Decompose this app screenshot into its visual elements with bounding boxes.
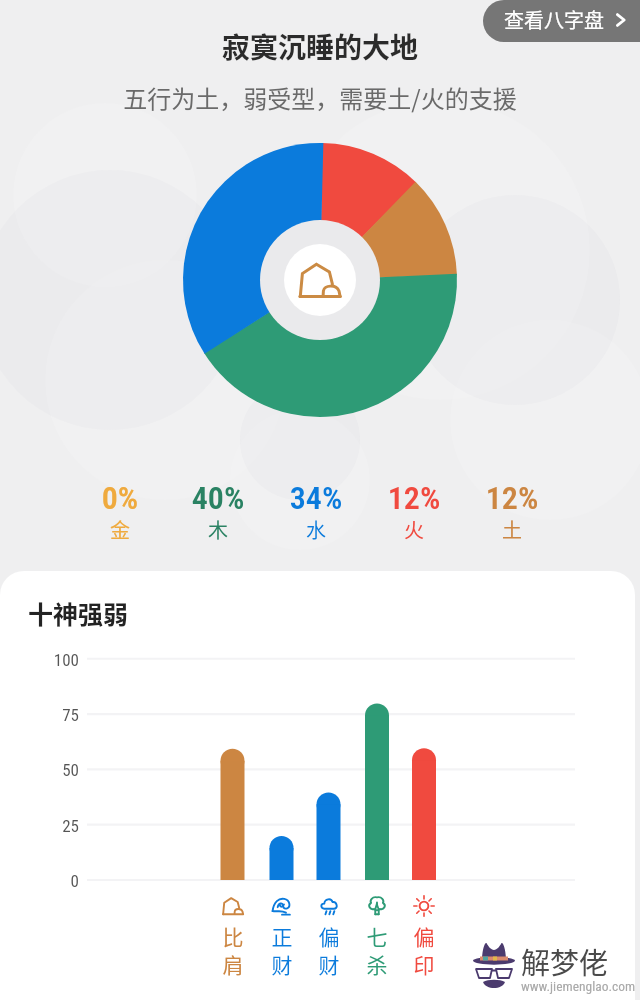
staticText: 0%: [80, 479, 160, 517]
staticText: 水: [276, 515, 356, 544]
staticText: 偏 印: [402, 921, 446, 979]
staticText: www.jiemenglao.com: [521, 978, 635, 994]
staticText: 十神强弱: [28, 595, 129, 631]
staticText: 100: [19, 650, 79, 670]
staticText: 土: [472, 515, 552, 544]
staticText: 查看八字盘: [504, 5, 604, 34]
staticText: 金: [80, 515, 160, 544]
staticText: 40%: [178, 479, 258, 517]
staticText: 0: [19, 871, 79, 891]
staticText: 正 财: [260, 921, 304, 979]
staticText: 解梦佬: [521, 940, 609, 982]
staticText: 寂寞沉睡的大地: [0, 26, 640, 67]
staticText: 25: [19, 816, 79, 836]
staticText: 木: [178, 515, 258, 544]
staticText: 火: [374, 515, 454, 544]
staticText: 50: [19, 760, 79, 780]
staticText: 偏 财: [307, 921, 351, 979]
staticText: 12%: [472, 479, 552, 517]
staticText: 75: [19, 705, 79, 725]
staticText: 34%: [276, 479, 356, 517]
staticText: 七 杀: [355, 921, 399, 979]
staticText: 比 肩: [211, 921, 255, 979]
staticText: 12%: [374, 479, 454, 517]
staticText: 五行为土，弱受型，需要土/火的支援: [0, 80, 640, 115]
button[interactable]: 查看八字盘: [483, 0, 640, 42]
